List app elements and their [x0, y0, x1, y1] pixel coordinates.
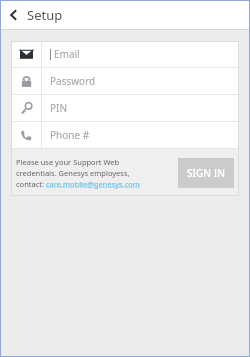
staticText: contact:	[16, 179, 46, 189]
staticText: Email	[54, 47, 80, 61]
staticText: credentials. Genesys employess,	[16, 168, 130, 178]
staticText: Please use your Support Web	[16, 157, 120, 167]
button[interactable]: care.mobile@genesys.com	[46, 179, 140, 189]
button[interactable]: PIN	[11, 95, 239, 121]
button[interactable]: Password	[11, 68, 239, 94]
button[interactable]: Phone #	[11, 122, 239, 148]
staticText: Setup	[27, 6, 63, 24]
staticText: PIN	[50, 101, 68, 115]
button[interactable]: Email	[11, 41, 239, 67]
staticText: Phone #	[50, 128, 90, 142]
button[interactable]: Back	[1, 2, 27, 28]
staticText: Password	[50, 74, 96, 88]
button[interactable]: SIGN IN	[178, 158, 234, 188]
staticText: SIGN IN	[187, 166, 225, 180]
